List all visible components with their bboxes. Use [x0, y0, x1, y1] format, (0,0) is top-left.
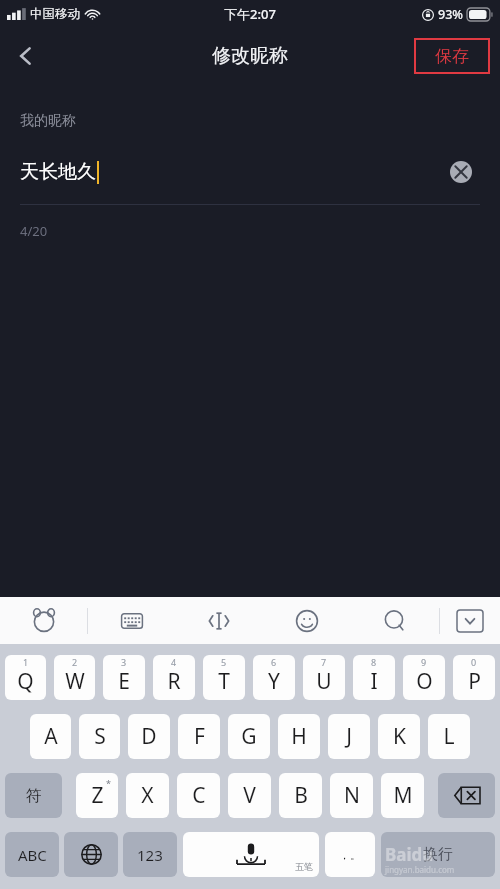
button[interactable]: ABC	[5, 832, 59, 877]
button[interactable]: 1	[5, 655, 46, 700]
staticText: ABC	[18, 845, 47, 865]
staticText: 3	[121, 656, 127, 668]
button[interactable]: M	[381, 773, 424, 818]
button[interactable]: Search	[351, 597, 439, 644]
staticText: 下午2:07	[224, 5, 276, 23]
staticText: H	[291, 722, 307, 751]
staticText: 93%	[438, 6, 463, 23]
staticText: T	[218, 667, 230, 696]
staticText: O	[416, 667, 433, 696]
button[interactable]: B	[279, 773, 322, 818]
staticText: N	[344, 781, 360, 810]
staticText: 8	[371, 656, 377, 668]
staticText: 保存	[435, 46, 469, 67]
staticText: Y	[268, 667, 280, 696]
staticText: P	[468, 667, 481, 696]
button[interactable]: 3	[103, 655, 145, 700]
button[interactable]: 符	[5, 773, 62, 818]
button[interactable]: Keyboard layout	[88, 597, 175, 644]
button[interactable]: 9	[403, 655, 445, 700]
staticText: 7	[321, 656, 327, 668]
staticText: 6	[271, 656, 277, 668]
staticText: L	[443, 722, 455, 751]
button[interactable]: Hide keyboard	[440, 597, 500, 644]
staticText: C	[192, 781, 206, 810]
button[interactable]: Clear text	[449, 160, 473, 184]
button[interactable]: F	[178, 714, 220, 759]
button[interactable]: J	[328, 714, 370, 759]
staticText: 换行	[423, 845, 453, 864]
staticText: G	[241, 722, 257, 751]
staticText: I	[370, 667, 378, 696]
staticText: 123	[137, 845, 163, 865]
button[interactable]: H	[278, 714, 320, 759]
staticText: F	[194, 722, 205, 751]
staticText: 4	[171, 656, 177, 668]
staticText: A	[44, 722, 58, 751]
button[interactable]: 8	[353, 655, 395, 700]
staticText: 2	[72, 656, 78, 668]
staticText: *	[106, 777, 111, 789]
staticText: U	[316, 667, 332, 696]
staticText: Q	[17, 667, 34, 696]
button[interactable]: N	[330, 773, 373, 818]
staticText: J	[346, 722, 352, 751]
staticText: D	[141, 722, 157, 751]
button[interactable]: 保存	[414, 38, 490, 74]
button[interactable]: Switch language	[64, 832, 118, 877]
button[interactable]: Emoji	[263, 597, 351, 644]
staticText: Z	[91, 781, 104, 810]
button[interactable]: Space	[183, 832, 319, 877]
button[interactable]: K	[378, 714, 420, 759]
button[interactable]: 7	[303, 655, 345, 700]
button[interactable]: Z	[76, 773, 118, 818]
staticText: 我的昵称	[20, 112, 76, 130]
button[interactable]: 0	[453, 655, 495, 700]
staticText: 9	[421, 656, 427, 668]
button[interactable]: 2	[54, 655, 95, 700]
staticText: B	[294, 781, 308, 810]
button[interactable]: X	[126, 773, 169, 818]
staticText: Baidu	[385, 843, 434, 866]
button[interactable]: C	[177, 773, 220, 818]
button[interactable]: Move cursor	[175, 597, 263, 644]
button[interactable]: S	[79, 714, 120, 759]
staticText: 0	[471, 656, 477, 668]
staticText: R	[167, 667, 181, 696]
staticText: jingyan.baidu.com	[385, 864, 455, 875]
button[interactable]: Back	[0, 30, 52, 82]
button[interactable]: A	[30, 714, 71, 759]
button[interactable]: 5	[203, 655, 245, 700]
staticText: 4/20	[20, 222, 48, 240]
staticText: X	[141, 781, 154, 810]
button[interactable]: 4	[153, 655, 195, 700]
staticText: ，。	[339, 848, 361, 862]
button[interactable]: 123	[123, 832, 177, 877]
button[interactable]: L	[428, 714, 470, 759]
staticText: 中国移动	[30, 6, 80, 22]
staticText: 修改昵称	[212, 44, 288, 68]
staticText: K	[393, 722, 406, 751]
staticText: M	[393, 781, 413, 810]
staticText: W	[65, 667, 85, 696]
button[interactable]: 6	[253, 655, 295, 700]
staticText: V	[243, 781, 256, 810]
button[interactable]: Backspace	[438, 773, 495, 818]
button[interactable]: D	[128, 714, 170, 759]
staticText: 符	[26, 786, 42, 806]
button[interactable]: 换行	[381, 832, 495, 877]
staticText: 5	[221, 656, 227, 668]
button[interactable]: ，。	[325, 832, 375, 877]
staticText: 五笔	[295, 861, 313, 872]
button[interactable]: V	[228, 773, 271, 818]
button[interactable]: Baidu input	[0, 597, 87, 644]
staticText: 天长地久	[20, 160, 96, 184]
staticText: S	[94, 722, 106, 751]
button[interactable]: G	[228, 714, 270, 759]
staticText: E	[118, 667, 130, 696]
staticText: 1	[23, 656, 29, 668]
